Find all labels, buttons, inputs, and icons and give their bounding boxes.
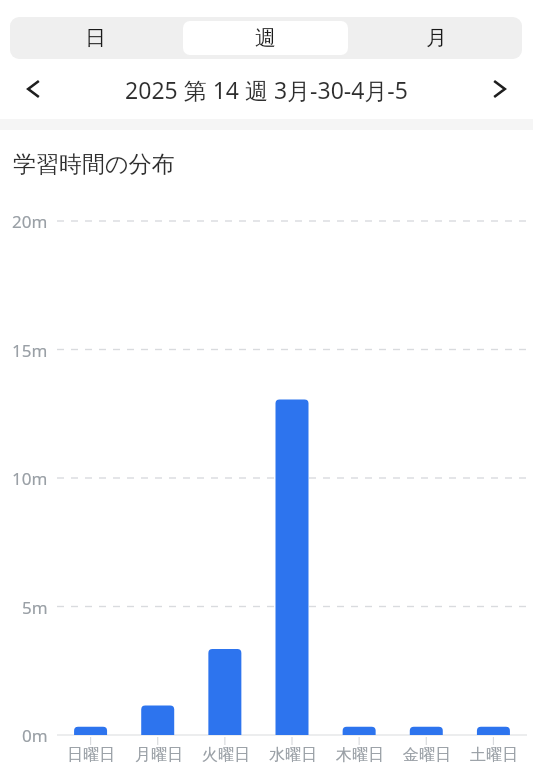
staticText: 0m bbox=[22, 724, 48, 747]
staticText: 20m bbox=[12, 210, 48, 233]
button[interactable]: Previous week bbox=[0, 59, 66, 119]
button[interactable]: Next week bbox=[467, 59, 533, 119]
staticText: 木曜日 bbox=[336, 745, 384, 765]
staticText: 月 bbox=[426, 25, 447, 51]
staticText: 週 bbox=[255, 25, 276, 51]
button[interactable]: 日 bbox=[13, 21, 177, 55]
staticText: 5m bbox=[22, 596, 48, 619]
staticText: 月曜日 bbox=[135, 745, 183, 765]
staticText: 15m bbox=[12, 339, 48, 362]
staticText: 10m bbox=[12, 467, 48, 490]
staticText: 金曜日 bbox=[403, 745, 451, 765]
staticText: 日 bbox=[85, 25, 106, 51]
staticText: 学習時間の分布 bbox=[13, 150, 175, 179]
staticText: 土曜日 bbox=[470, 745, 518, 765]
button[interactable]: 週 bbox=[183, 21, 348, 55]
staticText: 日曜日 bbox=[67, 745, 115, 765]
staticText: 火曜日 bbox=[202, 745, 250, 765]
button[interactable]: 月 bbox=[354, 21, 519, 55]
staticText: 2025 第 14 週 3月-30-4月-5 bbox=[125, 74, 408, 105]
staticText: 水曜日 bbox=[269, 745, 317, 765]
